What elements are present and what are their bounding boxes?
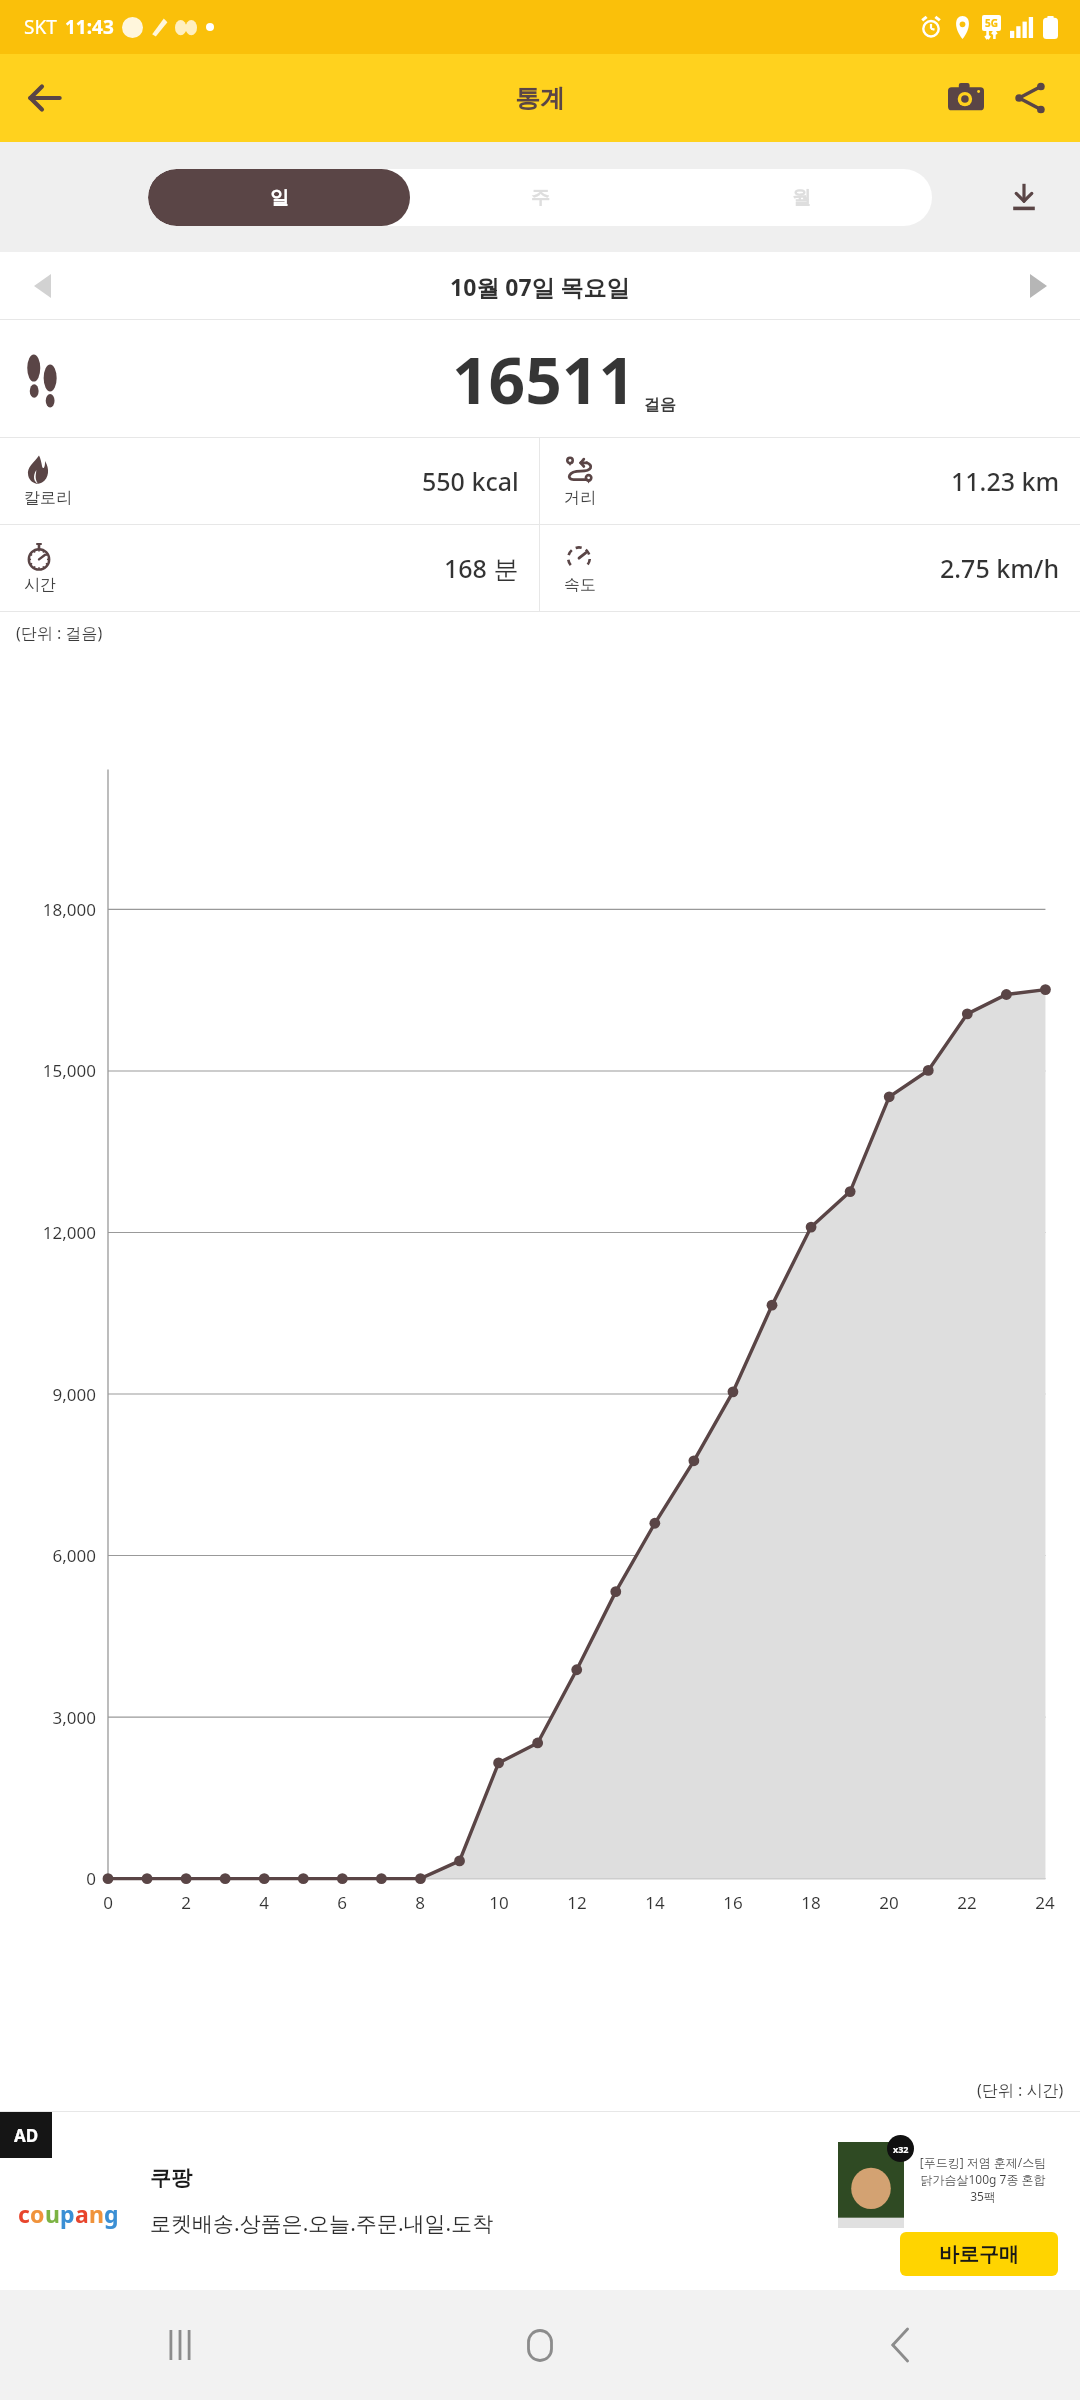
staticText: (단위 : 시간)	[977, 2079, 1064, 2101]
staticText: 12,000	[42, 1221, 96, 1244]
staticText: c	[18, 2198, 30, 2229]
staticText: 쿠팡	[150, 2165, 192, 2191]
staticText: 14	[645, 1891, 665, 1914]
staticText: 18,000	[42, 898, 96, 921]
staticText: 10	[489, 1891, 509, 1914]
staticText: 16	[723, 1891, 743, 1914]
button[interactable]: 칼로리	[0, 438, 539, 524]
staticText: [푸드킹] 저염 훈제/스팀 닭가슴살100g 7종 혼합 35팩	[908, 2154, 1058, 2204]
staticText: 6,000	[52, 1544, 96, 1567]
staticText: 칼로리	[24, 488, 72, 508]
staticText: 3,000	[52, 1706, 96, 1729]
button[interactable]: 거리	[540, 438, 1080, 524]
staticText: 168 분	[444, 551, 519, 585]
button[interactable]: Share	[998, 66, 1062, 130]
staticText: AD	[14, 2124, 39, 2147]
staticText: a	[75, 2198, 89, 2229]
staticText: 550 kcal	[422, 464, 519, 498]
staticText: (단위 : 걸음)	[16, 622, 103, 644]
staticText: 통계	[515, 83, 565, 114]
staticText: 속도	[564, 575, 596, 595]
staticText: 16511	[452, 336, 636, 423]
button[interactable]: Previous day	[14, 258, 70, 314]
staticText: 20	[879, 1891, 899, 1914]
button[interactable]: Screenshot	[934, 66, 998, 130]
staticText: x32	[893, 2143, 909, 2155]
staticText: g	[104, 2198, 119, 2229]
staticText: 18	[801, 1891, 821, 1914]
staticText: o	[30, 2198, 45, 2229]
button[interactable]: 시간	[0, 525, 539, 611]
staticText: p	[60, 2198, 75, 2229]
button[interactable]: Recent apps	[0, 2290, 360, 2400]
button[interactable]: Back	[12, 66, 76, 130]
staticText: 10월 07일 목요일	[450, 271, 630, 302]
button[interactable]: Download	[992, 165, 1056, 229]
button[interactable]: 바로구매	[900, 2232, 1058, 2276]
staticText: 5G	[985, 16, 998, 30]
staticText: 바로구매	[939, 2242, 1019, 2267]
staticText: 2.75 km/h	[940, 551, 1060, 585]
button[interactable]: AD	[0, 2112, 1080, 2290]
button[interactable]: 월	[671, 169, 932, 226]
staticText: u	[45, 2198, 60, 2229]
button[interactable]: Next day	[1010, 258, 1066, 314]
staticText: 15,000	[42, 1059, 96, 1082]
staticText: n	[89, 2198, 104, 2229]
staticText: 8	[415, 1891, 425, 1914]
staticText: 시간	[24, 575, 56, 595]
staticText: 0	[103, 1891, 113, 1914]
staticText: 로켓배송.상품은.오늘.주문.내일.도착	[150, 2209, 494, 2238]
staticText: 22	[957, 1891, 977, 1914]
button[interactable]: 일	[148, 169, 410, 226]
staticText: 11.23 km	[951, 464, 1060, 498]
staticText: 0	[86, 1867, 96, 1890]
staticText: 12	[567, 1891, 587, 1914]
staticText: 6	[337, 1891, 347, 1914]
staticText: SKT	[24, 14, 57, 40]
staticText: 주	[531, 186, 550, 210]
staticText: 월	[792, 186, 811, 210]
staticText: 4	[259, 1891, 269, 1914]
staticText: 2	[181, 1891, 191, 1914]
staticText: 걸음	[644, 395, 676, 415]
button[interactable]: 속도	[540, 525, 1080, 611]
button[interactable]: Back	[720, 2290, 1080, 2400]
staticText: 일	[270, 186, 289, 210]
staticText: 24	[1035, 1891, 1055, 1914]
button[interactable]: Home	[360, 2290, 720, 2400]
staticText: 11:43	[65, 14, 114, 40]
staticText: 9,000	[52, 1383, 96, 1406]
staticText: 거리	[564, 488, 596, 508]
